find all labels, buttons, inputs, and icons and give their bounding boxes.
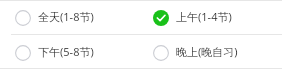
staticText: 全天(1-8节) bbox=[38, 9, 94, 24]
button[interactable]: 全天(1-8节) bbox=[0, 0, 138, 35]
staticText: 上午(1-4节) bbox=[176, 9, 232, 24]
staticText: 下午(5-8节) bbox=[38, 44, 94, 59]
button[interactable]: 上午(1-4节) bbox=[138, 0, 282, 35]
button[interactable]: 晚上(晚自习) bbox=[138, 35, 282, 70]
button[interactable]: 下午(5-8节) bbox=[0, 35, 138, 70]
staticText: 晚上(晚自习) bbox=[176, 44, 238, 59]
